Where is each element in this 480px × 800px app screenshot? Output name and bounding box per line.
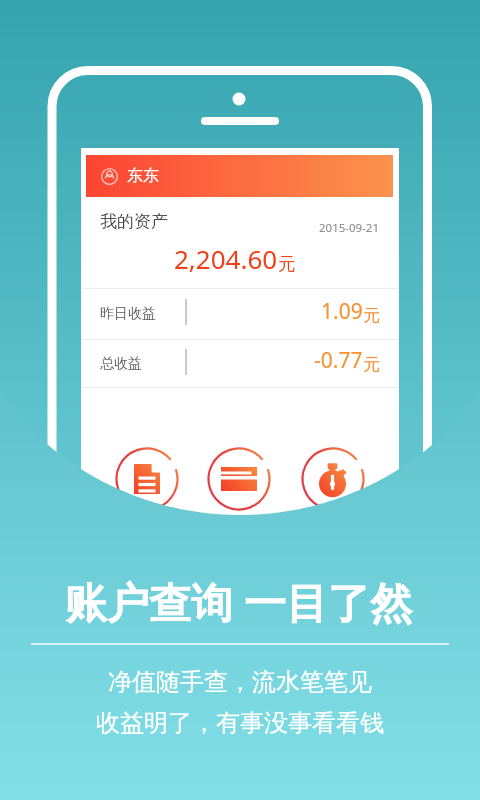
staticText: 总收益 (100, 355, 142, 373)
staticText: 昨日收益 (100, 305, 156, 323)
staticText: -0.77 (314, 346, 363, 375)
staticText: 元 (363, 354, 380, 375)
staticText: 净值随手查，流水笔笔见 (108, 667, 372, 697)
button[interactable]: Bills (115, 447, 179, 511)
staticText: 账户查询 一目了然 (65, 573, 412, 630)
button[interactable]: Transactions (207, 447, 271, 511)
staticText: 1.09 (321, 297, 363, 326)
button[interactable]: History (301, 447, 365, 511)
staticText: 2,204.60 (174, 241, 278, 276)
button[interactable]: 东东 (86, 155, 393, 197)
staticText: 2015-09-21 (319, 220, 380, 236)
staticText: 元 (363, 305, 380, 326)
staticText: 东东 (127, 166, 159, 186)
button[interactable]: 昨日收益 (81, 289, 399, 339)
staticText: 元 (278, 253, 296, 275)
button[interactable]: 总收益 (81, 340, 399, 387)
staticText: 收益明了，有事没事看看钱 (96, 708, 384, 738)
staticText: 我的资产 (100, 211, 168, 232)
